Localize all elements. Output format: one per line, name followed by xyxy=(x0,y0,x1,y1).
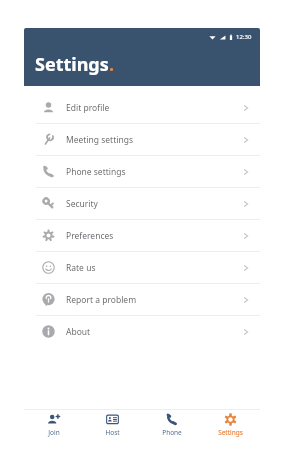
staticText: Report a problem xyxy=(66,294,137,306)
staticText: Security xyxy=(66,198,98,210)
button[interactable]: Phone xyxy=(142,410,201,440)
staticText: Edit profile xyxy=(66,102,110,114)
staticText: Settings xyxy=(218,428,243,437)
button[interactable]: Preferences xyxy=(24,220,260,251)
staticText: About xyxy=(66,326,91,338)
button[interactable]: About xyxy=(24,316,260,347)
staticText: Rate us xyxy=(66,262,96,274)
staticText: Join xyxy=(48,428,60,437)
button[interactable]: Join xyxy=(24,410,83,440)
button[interactable]: Settings xyxy=(201,410,260,440)
button[interactable]: Phone settings xyxy=(24,156,260,187)
button[interactable]: Report a problem xyxy=(24,284,260,315)
button[interactable]: Meeting settings xyxy=(24,124,260,155)
button[interactable]: Edit profile xyxy=(24,92,260,123)
staticText: Phone xyxy=(162,428,182,437)
staticText: . xyxy=(109,52,115,77)
staticText: Preferences xyxy=(66,230,114,242)
staticText: Settings xyxy=(35,52,109,77)
staticText: 12:30 xyxy=(236,33,252,41)
button[interactable]: Security xyxy=(24,188,260,219)
staticText: Phone settings xyxy=(66,166,126,178)
button[interactable]: Host xyxy=(83,410,142,440)
button[interactable]: Rate us xyxy=(24,252,260,283)
staticText: Meeting settings xyxy=(66,134,133,146)
staticText: Host xyxy=(105,428,120,437)
